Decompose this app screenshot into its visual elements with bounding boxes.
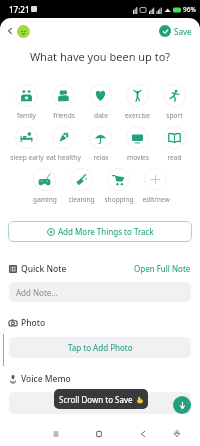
button[interactable]: Add Note...	[9, 282, 191, 302]
staticText: exercise	[125, 111, 150, 120]
staticText: Photo	[21, 317, 46, 328]
button[interactable]	[9, 392, 191, 414]
button[interactable]: Tap to Add Photo	[9, 337, 191, 358]
staticText: 96%	[183, 5, 196, 14]
staticText: 17:21	[9, 4, 30, 15]
button[interactable]: date	[82, 84, 119, 120]
button[interactable]: exercise	[119, 84, 156, 120]
button[interactable]: Back	[134, 425, 152, 443]
button[interactable]: sport	[156, 84, 193, 120]
staticText: What have you been up to?	[0, 49, 200, 64]
button[interactable]: sleep early	[8, 126, 45, 162]
button[interactable]: read	[156, 126, 193, 162]
staticText: relax	[93, 153, 109, 162]
button[interactable]: relax	[82, 126, 119, 162]
button[interactable]: Profile	[17, 25, 30, 38]
button[interactable]: family	[8, 84, 45, 120]
staticText: gaming	[33, 195, 57, 204]
staticText: cleaning	[68, 195, 95, 204]
button[interactable]: cleaning	[63, 168, 100, 204]
button[interactable]: shopping	[100, 168, 137, 204]
staticText: sport	[166, 111, 183, 120]
button[interactable]: edit/new	[137, 168, 174, 204]
staticText: date	[94, 111, 108, 120]
staticText: read	[167, 153, 182, 162]
staticText: Tap to Add Photo	[68, 342, 133, 353]
staticText: eat healthy	[46, 153, 81, 162]
button[interactable]: eat healthy	[45, 126, 82, 162]
button[interactable]: Scroll down	[173, 396, 191, 414]
button[interactable]: Home	[90, 425, 108, 443]
button[interactable]: Open Full Note	[134, 263, 191, 274]
staticText: movies	[127, 153, 149, 162]
staticText: edit/new	[142, 195, 170, 204]
staticText: friends	[53, 111, 75, 120]
button[interactable]: movies	[119, 126, 156, 162]
button[interactable]: Recents	[47, 425, 65, 443]
staticText: Add Note...	[16, 287, 58, 298]
staticText: sleep early	[10, 153, 44, 162]
button[interactable]: Hide keyboard	[168, 425, 186, 443]
button[interactable]: gaming	[26, 168, 63, 204]
button[interactable]: friends	[45, 84, 82, 120]
staticText: family	[17, 111, 36, 120]
staticText: Save	[174, 26, 192, 37]
staticText: Quick Note	[21, 263, 67, 274]
staticText: shopping	[104, 195, 134, 204]
button[interactable]: Add More Things to Track	[8, 221, 192, 242]
staticText: Add More Things to Track	[58, 226, 154, 237]
staticText: Voice Memo	[21, 373, 71, 384]
button[interactable]: Save	[158, 23, 193, 39]
staticText: Scroll Down to Save	[59, 394, 133, 405]
button[interactable]: Back	[4, 25, 16, 37]
